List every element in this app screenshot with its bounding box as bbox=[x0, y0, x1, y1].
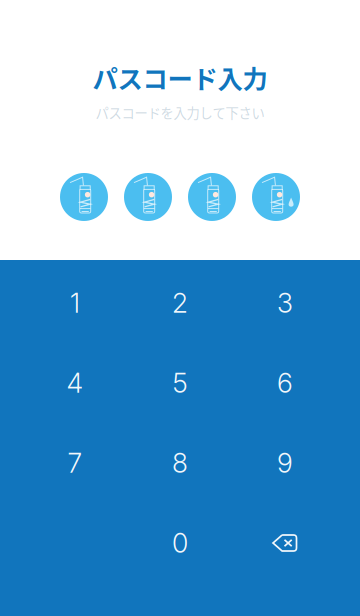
staticText: 1 bbox=[70, 287, 80, 319]
button[interactable]: 8 bbox=[127, 423, 232, 503]
staticText: 8 bbox=[172, 447, 188, 479]
staticText: 9 bbox=[277, 447, 293, 479]
staticText: パスコード入力 bbox=[92, 59, 267, 96]
button[interactable]: 3 bbox=[232, 263, 337, 343]
staticText: 7 bbox=[67, 447, 82, 479]
button[interactable]: 9 bbox=[232, 423, 337, 503]
button[interactable]: 7 bbox=[22, 423, 127, 503]
staticText: 5 bbox=[172, 367, 187, 399]
staticText: 3 bbox=[277, 287, 293, 319]
button[interactable]: 4 bbox=[22, 343, 127, 423]
button[interactable]: 0 bbox=[127, 503, 232, 583]
staticText: 6 bbox=[277, 367, 293, 399]
button[interactable]: 5 bbox=[127, 343, 232, 423]
button[interactable]: 1 bbox=[22, 263, 127, 343]
button[interactable]: 2 bbox=[127, 263, 232, 343]
staticText: 4 bbox=[66, 367, 83, 399]
staticText: 0 bbox=[172, 527, 188, 559]
staticText: 2 bbox=[172, 287, 188, 319]
staticText: パスコードを入力して下さい bbox=[95, 103, 264, 122]
button[interactable]: 6 bbox=[232, 343, 337, 423]
button[interactable]: Delete bbox=[232, 503, 337, 583]
